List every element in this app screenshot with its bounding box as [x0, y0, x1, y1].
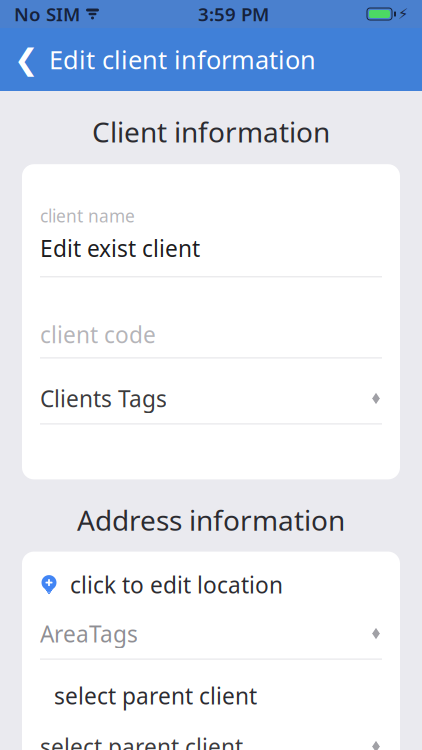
staticText: select parent client	[40, 731, 243, 750]
staticText: Client information	[92, 113, 330, 150]
staticText: No SIM	[14, 2, 80, 26]
staticText: ⚡︎	[398, 6, 408, 22]
button[interactable]: AreaTags	[40, 598, 382, 660]
staticText: client name	[40, 204, 135, 227]
button[interactable]: Back — Edit client information	[0, 28, 422, 91]
staticText: Edit exist client	[40, 233, 200, 263]
staticText: Address information	[77, 501, 345, 539]
staticText: Edit client information	[49, 43, 316, 76]
staticText: 3:59 PM	[198, 2, 269, 26]
button[interactable]: select parent client	[40, 708, 382, 750]
staticText: ❮	[14, 43, 39, 76]
staticText: AreaTags	[40, 618, 138, 649]
staticText: Clients Tags	[40, 383, 167, 413]
button[interactable]: select parent client	[40, 660, 382, 708]
staticText: click to edit location	[70, 569, 283, 600]
button[interactable]: Clients Tags	[40, 358, 382, 424]
button[interactable]: click to edit location	[40, 552, 382, 598]
staticText: client code	[40, 319, 156, 349]
staticText: select parent client	[54, 680, 257, 711]
